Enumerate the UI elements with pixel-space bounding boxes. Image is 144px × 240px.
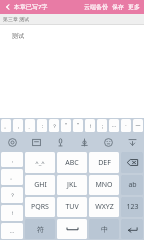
staticText: ， [16, 123, 21, 129]
button[interactable]: Emoji [96, 133, 120, 151]
button[interactable]: WXYZ [89, 197, 119, 217]
button[interactable]: GHI [25, 175, 55, 195]
staticText: ： [40, 123, 45, 129]
staticText: 。 [10, 174, 15, 180]
staticText: ； [100, 123, 105, 129]
button[interactable]: ？ [49, 119, 59, 132]
staticText: 更多 [128, 3, 140, 11]
button[interactable]: 云端备份 [84, 3, 108, 11]
staticText: 测试 [12, 32, 24, 40]
staticText: 保存 [112, 3, 124, 11]
button[interactable]: Space [57, 219, 87, 239]
button[interactable]: 中 [89, 219, 119, 239]
button[interactable]: 本章已写7字 [14, 3, 48, 11]
button[interactable]: 符 [25, 219, 55, 239]
staticText: ^_^ [35, 159, 45, 167]
button[interactable]: ！ [1, 205, 23, 221]
button[interactable]: ， [1, 152, 23, 167]
button[interactable]: Hide keyboard [120, 133, 144, 151]
staticText: PQRS [31, 202, 49, 212]
button[interactable]: Backspace [121, 152, 143, 173]
button[interactable]: Clipboard [24, 133, 48, 151]
staticText: — [135, 122, 141, 129]
button[interactable]: ！ [85, 119, 95, 132]
button[interactable]: 123 [121, 197, 143, 217]
staticText: ABC [65, 158, 79, 168]
button[interactable]: 保存 [112, 3, 124, 11]
button[interactable]: ： [37, 119, 47, 132]
button[interactable]: 、 [25, 119, 35, 132]
staticText: 云端备份 [84, 3, 108, 11]
button[interactable]: ” [73, 119, 83, 132]
button[interactable]: TUV [57, 197, 87, 217]
button[interactable]: ABC [57, 152, 87, 173]
staticText: 第三章 测试 [3, 16, 30, 23]
button[interactable]: ab [121, 175, 143, 195]
staticText: GHI [34, 180, 47, 190]
staticText: ab [128, 180, 137, 190]
button[interactable]: ； [97, 119, 107, 132]
staticText: TUV [65, 202, 79, 212]
button[interactable]: 更多 [128, 3, 140, 11]
staticText: … [10, 228, 14, 235]
staticText: “ [65, 122, 67, 129]
staticText: … [112, 122, 116, 129]
staticText: · [125, 122, 127, 129]
button[interactable]: MNO [89, 175, 119, 195]
staticText: DEF [98, 158, 111, 168]
button[interactable]: — [133, 119, 143, 132]
staticText: 中 [101, 225, 108, 234]
button[interactable]: ？ [1, 187, 23, 203]
staticText: MNO [95, 180, 113, 190]
button[interactable]: Settings [0, 133, 24, 151]
button[interactable]: … [109, 119, 119, 132]
staticText: ？ [10, 192, 15, 198]
button[interactable]: ^_^ [25, 152, 55, 173]
staticText: ！ [88, 123, 93, 129]
button[interactable]: PQRS [25, 197, 55, 217]
button[interactable]: Back [3, 2, 13, 12]
staticText: WXYZ [95, 202, 114, 212]
button[interactable]: DEF [89, 152, 119, 173]
button[interactable]: 。 [1, 119, 11, 132]
button[interactable]: JKL [57, 175, 87, 195]
button[interactable]: 第三章 测试 [0, 14, 144, 24]
staticText: 123 [126, 202, 139, 212]
staticText: ！ [10, 210, 15, 216]
button[interactable]: “ [61, 119, 71, 132]
button[interactable]: Theme [72, 133, 96, 151]
button[interactable]: Voice input [48, 133, 72, 151]
button[interactable]: Enter [121, 219, 143, 239]
button[interactable]: · [121, 119, 131, 132]
staticText: ， [10, 157, 15, 163]
button[interactable]: … [1, 223, 23, 239]
staticText: JKL [67, 180, 77, 190]
staticText: 、 [28, 123, 33, 129]
staticText: 本章已写7字 [14, 3, 48, 11]
button[interactable]: 。 [1, 169, 23, 185]
staticText: ” [77, 122, 79, 129]
staticText: 。 [4, 123, 9, 129]
staticText: 符 [37, 225, 44, 234]
staticText: ？ [52, 123, 57, 129]
button[interactable]: ， [13, 119, 23, 132]
